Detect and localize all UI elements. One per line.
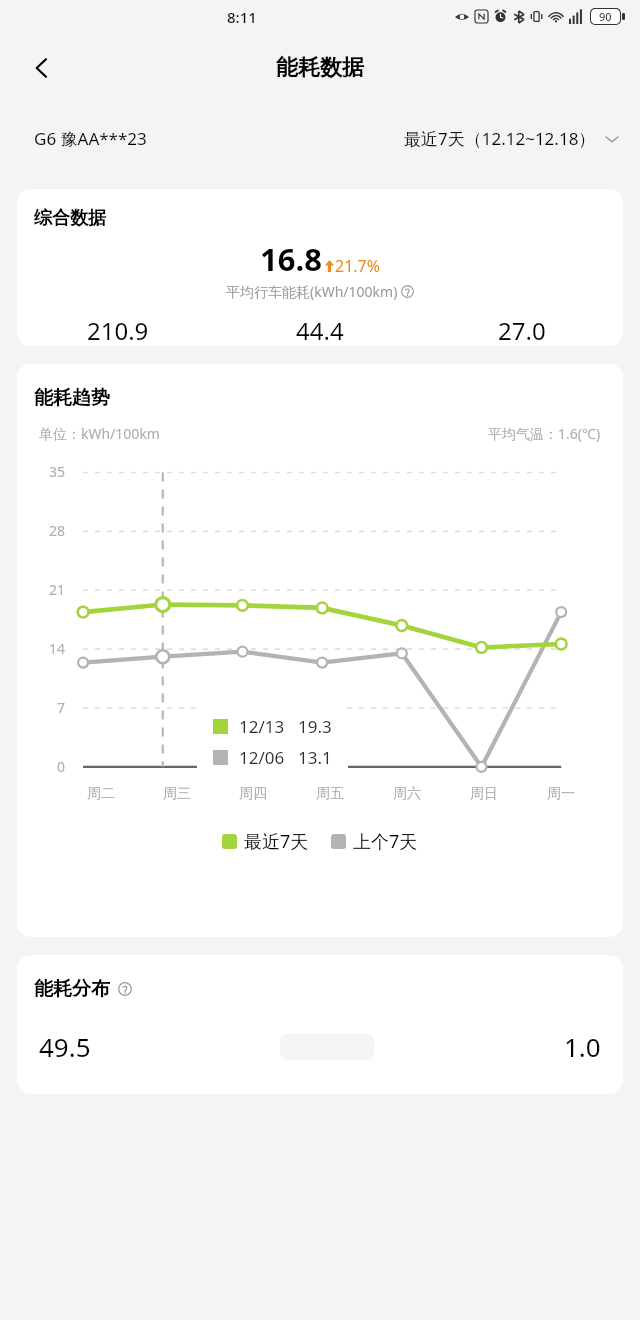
staticText: 8:11	[227, 7, 257, 27]
staticText: 平均行车能耗(kWh/100km)	[226, 282, 398, 301]
staticText: 49.5	[39, 1029, 91, 1064]
staticText: 能耗数据	[276, 54, 364, 82]
staticText: 13.1	[298, 746, 332, 769]
button[interactable]: 上个7天	[331, 829, 418, 854]
staticText: 综合数据	[34, 207, 106, 230]
staticText: 44.4	[296, 314, 344, 346]
staticText: 周三	[163, 785, 191, 803]
staticText: 27.0	[498, 314, 546, 346]
staticText: 7	[17, 698, 65, 717]
button[interactable]: 44.4	[219, 314, 421, 346]
staticText: 周一	[547, 785, 575, 803]
button[interactable]: 210.9	[17, 314, 219, 346]
staticText: 210.9	[87, 314, 149, 346]
staticText: 28	[17, 521, 65, 540]
staticText: 周四	[239, 785, 267, 803]
staticText: 16.8	[260, 238, 322, 280]
staticText: 最近7天（12.12~12.18）	[404, 127, 596, 150]
staticText: 14	[17, 639, 65, 658]
staticText: 平均气温：1.6(℃)	[488, 424, 601, 443]
staticText: 1.0	[564, 1029, 601, 1064]
staticText: 能耗趋势	[34, 386, 110, 410]
staticText: 12/13	[239, 715, 285, 738]
button[interactable]: Back	[18, 44, 66, 92]
staticText: 35	[17, 462, 65, 481]
staticText: 单位：kWh/100km	[39, 424, 160, 443]
button[interactable]: 最近7天（12.12~12.18）	[404, 127, 622, 150]
staticText: 上个7天	[353, 829, 418, 854]
staticText: 周日	[470, 785, 498, 803]
button[interactable]: 27.0	[421, 314, 623, 346]
staticText: 90	[599, 9, 612, 24]
staticText: 周六	[393, 785, 421, 803]
button[interactable]: G6 豫AA***23	[34, 127, 147, 150]
staticText: 能耗分布	[34, 977, 110, 1001]
staticText: 最近7天	[244, 829, 309, 854]
staticText: 19.3	[298, 715, 332, 738]
staticText: 21.7%	[335, 255, 381, 277]
staticText: 0	[17, 757, 65, 776]
staticText: 21	[17, 580, 65, 599]
staticText: 周五	[316, 785, 344, 803]
button[interactable]: 最近7天	[222, 829, 309, 854]
staticText: 周二	[87, 785, 115, 803]
staticText: 12/06	[239, 746, 285, 769]
